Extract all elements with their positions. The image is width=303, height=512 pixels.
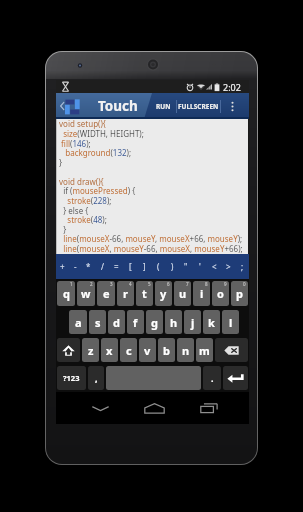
staticText: ): [171, 261, 174, 272]
staticText: stroke(228);: [59, 195, 112, 206]
button[interactable]: y: [155, 281, 172, 306]
button[interactable]: n: [177, 338, 194, 362]
button[interactable]: Back: [80, 392, 120, 424]
staticText: 7: [186, 281, 189, 287]
button[interactable]: v: [139, 338, 156, 362]
staticText: r: [123, 286, 128, 301]
staticText: 4: [129, 281, 132, 287]
staticText: +: [60, 261, 65, 272]
button[interactable]: =: [109, 254, 123, 279]
button[interactable]: a: [69, 310, 87, 334]
button[interactable]: RUN: [151, 93, 176, 119]
button[interactable]: k: [203, 310, 220, 334]
staticText: void setup(){: [59, 118, 106, 129]
button[interactable]: ": [179, 254, 193, 279]
staticText: FULLSCREEN: [178, 102, 219, 111]
button[interactable]: g: [146, 310, 163, 334]
button[interactable]: ?123: [57, 366, 86, 390]
staticText: -: [74, 261, 77, 272]
button[interactable]: r: [117, 281, 134, 306]
button[interactable]: j: [184, 310, 201, 334]
button[interactable]: t: [136, 281, 153, 306]
staticText: e: [103, 286, 110, 301]
button[interactable]: void setup(){: [56, 119, 249, 254]
staticText: background(132);: [59, 147, 132, 158]
button[interactable]: ,: [88, 366, 104, 390]
button[interactable]: i: [193, 281, 210, 306]
button[interactable]: (: [151, 254, 165, 279]
button[interactable]: ]: [137, 254, 151, 279]
button[interactable]: .: [203, 366, 221, 390]
staticText: }: [59, 157, 63, 168]
staticText: ': [199, 261, 201, 272]
staticText: >: [226, 261, 231, 272]
staticText: ,: [95, 372, 98, 384]
button[interactable]: u: [174, 281, 191, 306]
staticText: <: [212, 261, 217, 272]
staticText: 5: [148, 281, 151, 287]
staticText: 9: [224, 281, 227, 287]
staticText: c: [126, 343, 132, 358]
button[interactable]: Home: [134, 392, 174, 424]
staticText: [59, 166, 62, 177]
staticText: y: [160, 286, 167, 301]
button[interactable]: /: [95, 254, 109, 279]
button[interactable]: s: [89, 310, 106, 334]
button[interactable]: Enter: [223, 366, 248, 390]
button[interactable]: m: [196, 338, 213, 362]
button[interactable]: b: [158, 338, 175, 362]
button[interactable]: [106, 366, 201, 390]
button[interactable]: >: [221, 254, 235, 279]
button[interactable]: [: [123, 254, 137, 279]
button[interactable]: ;: [235, 254, 249, 279]
button[interactable]: f: [127, 310, 144, 334]
button[interactable]: Navigate up: [57, 93, 66, 119]
button[interactable]: e: [97, 281, 115, 306]
staticText: h: [170, 315, 178, 330]
button[interactable]: -: [69, 254, 82, 279]
button[interactable]: +: [56, 254, 69, 279]
button[interactable]: w: [77, 281, 95, 306]
staticText: void draw(){: [59, 176, 104, 187]
button[interactable]: ): [165, 254, 179, 279]
button[interactable]: ': [193, 254, 207, 279]
staticText: v: [144, 343, 151, 358]
button[interactable]: Shift: [57, 338, 80, 362]
button[interactable]: l: [222, 310, 239, 334]
button[interactable]: *: [82, 254, 95, 279]
button[interactable]: h: [165, 310, 182, 334]
staticText: ?123: [63, 373, 80, 383]
button[interactable]: FULLSCREEN: [177, 93, 220, 119]
button[interactable]: More options: [221, 93, 244, 119]
button[interactable]: p: [231, 281, 248, 306]
staticText: size(WIDTH, HEIGHT);: [59, 128, 144, 139]
staticText: 3: [110, 281, 113, 287]
staticText: line(mouseX-66, mouseY, mouseX+66, mouse…: [59, 233, 243, 244]
staticText: 2: [90, 281, 93, 287]
button[interactable]: o: [212, 281, 229, 306]
staticText: d: [113, 315, 120, 330]
button[interactable]: d: [108, 310, 125, 334]
staticText: f: [133, 315, 138, 330]
button[interactable]: <: [207, 254, 221, 279]
staticText: q: [63, 286, 70, 301]
staticText: w: [81, 286, 91, 301]
button[interactable]: x: [101, 338, 118, 362]
staticText: ;: [241, 261, 244, 272]
staticText: o: [217, 286, 224, 301]
staticText: i: [200, 286, 204, 301]
button[interactable]: c: [120, 338, 137, 362]
button[interactable]: Delete: [215, 338, 248, 362]
button[interactable]: q: [57, 281, 75, 306]
button[interactable]: z: [82, 338, 99, 362]
staticText: 2:02: [223, 81, 241, 93]
staticText: if (mousePressed) {: [59, 185, 136, 196]
staticText: m: [199, 343, 210, 358]
staticText: t: [142, 286, 147, 301]
staticText: *: [86, 261, 91, 272]
staticText: } else {: [59, 205, 89, 216]
staticText: /: [101, 261, 104, 272]
staticText: p: [236, 286, 243, 301]
button[interactable]: Recents: [189, 392, 229, 424]
staticText: 0: [243, 281, 246, 287]
